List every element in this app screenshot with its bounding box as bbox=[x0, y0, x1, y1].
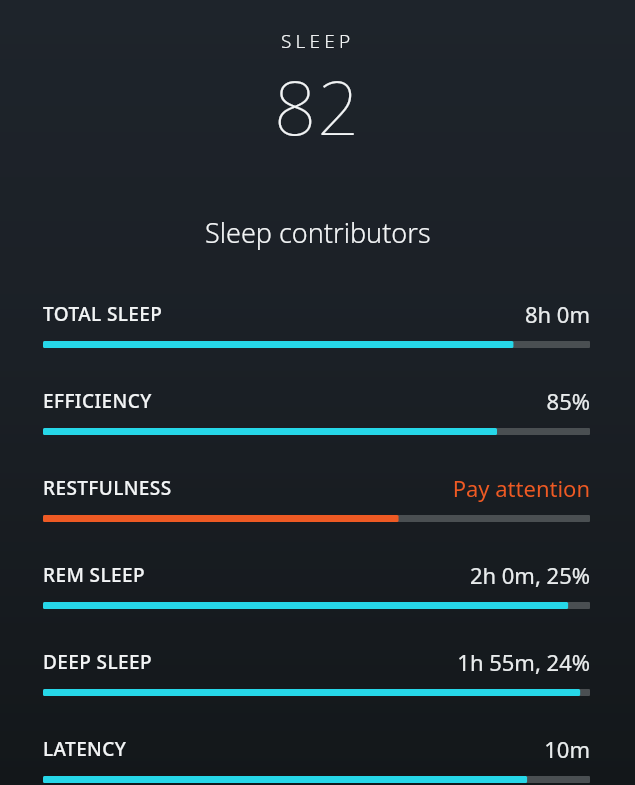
staticText: 2h 0m, 25% bbox=[469, 560, 590, 590]
staticText: EFFICIENCY bbox=[43, 388, 152, 414]
button[interactable]: RESTFULNESS bbox=[43, 473, 590, 522]
staticText: DEEP SLEEP bbox=[43, 649, 152, 675]
staticText: RESTFULNESS bbox=[43, 475, 172, 501]
button[interactable]: EFFICIENCY bbox=[43, 386, 590, 435]
staticText: LATENCY bbox=[43, 736, 127, 762]
button[interactable]: TOTAL SLEEP bbox=[43, 299, 590, 348]
button[interactable]: LATENCY bbox=[43, 734, 590, 783]
staticText: SLEEP bbox=[281, 28, 355, 54]
staticText: 82 bbox=[274, 56, 361, 157]
button[interactable]: REM SLEEP bbox=[43, 560, 590, 609]
staticText: Pay attention bbox=[452, 473, 590, 503]
staticText: TOTAL SLEEP bbox=[43, 301, 163, 327]
staticText: 10m bbox=[544, 734, 590, 764]
staticText: 85% bbox=[546, 386, 590, 416]
button[interactable]: DEEP SLEEP bbox=[43, 647, 590, 696]
staticText: 8h 0m bbox=[524, 299, 590, 329]
staticText: Sleep contributors bbox=[205, 214, 431, 251]
staticText: REM SLEEP bbox=[43, 562, 145, 588]
button[interactable]: SLEEP bbox=[0, 28, 635, 157]
staticText: 1h 55m, 24% bbox=[457, 647, 590, 677]
